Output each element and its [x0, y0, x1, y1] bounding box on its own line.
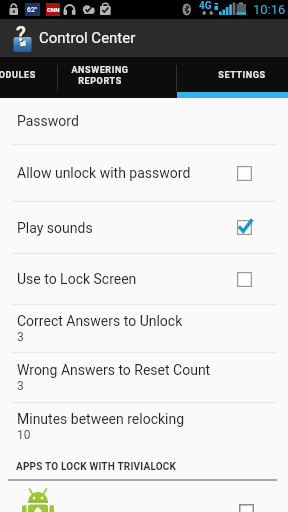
button[interactable]: ANSWERING [58, 57, 176, 98]
button[interactable]: SETTINGS [177, 57, 288, 98]
staticText: SETTINGS [218, 70, 266, 81]
staticText: CNN [47, 6, 60, 13]
button[interactable]: Play sounds [0, 202, 288, 253]
staticText: 3 [17, 379, 24, 393]
staticText: MODULES [0, 70, 36, 81]
staticText: REPORTS [78, 76, 122, 87]
button[interactable]: Wrong Answers to Reset Count [0, 353, 288, 402]
button[interactable]: Use to Lock Screen [0, 254, 288, 304]
button[interactable]: Correct Answers to Unlock [0, 305, 288, 352]
staticText: ? [17, 23, 27, 46]
button[interactable]: Allow unlock with password [0, 145, 288, 201]
staticText: Minutes between relocking [17, 411, 185, 427]
staticText: Use to Lock Screen [17, 271, 137, 287]
button[interactable]: Password [0, 98, 288, 144]
staticText: Password [17, 113, 79, 129]
staticText: ANSWERING [71, 65, 129, 76]
staticText: Control Center [39, 29, 136, 47]
staticText: Correct Answers to Unlock [17, 313, 183, 329]
button[interactable]: Minutes between relocking [0, 403, 288, 449]
staticText: 10 [17, 428, 31, 442]
staticText: 62° [27, 6, 38, 14]
staticText: Play sounds [17, 220, 93, 236]
button[interactable]: MODULES [0, 55, 46, 96]
staticText: Wrong Answers to Reset Count [17, 362, 211, 378]
staticText: 4G [199, 0, 212, 12]
staticText: 10:16 [253, 2, 286, 17]
staticText: ? [16, 22, 26, 45]
staticText: APPS TO LOCK WITH TRIVIALOCK [16, 461, 177, 473]
staticText: 3 [17, 330, 24, 344]
staticText: Allow unlock with password [17, 165, 191, 181]
button[interactable] [0, 481, 288, 512]
